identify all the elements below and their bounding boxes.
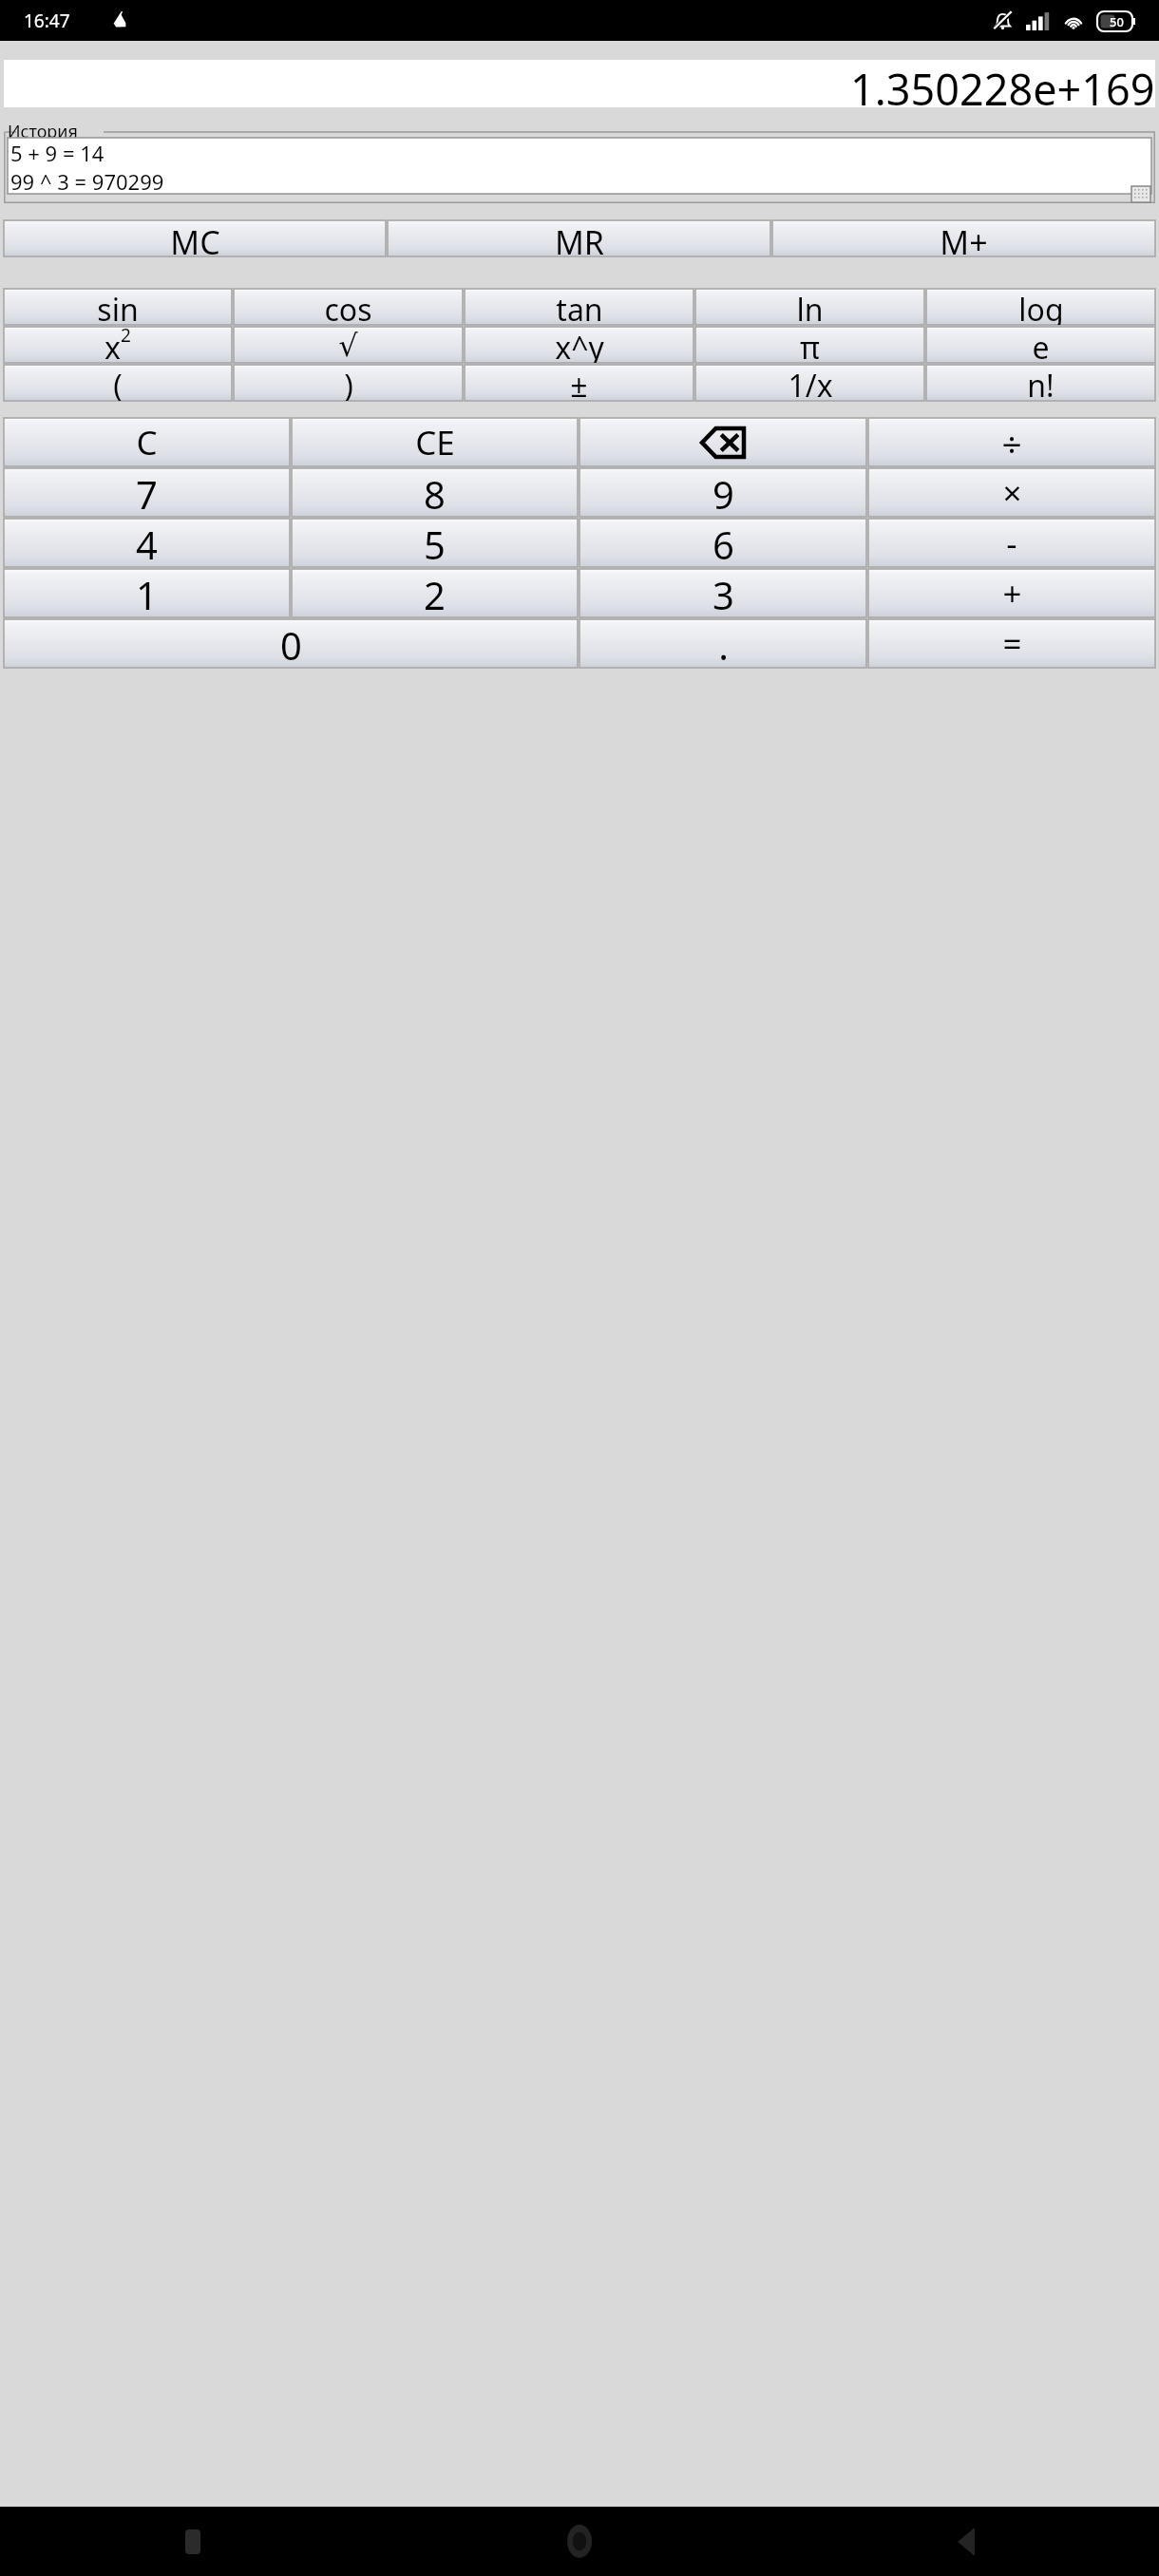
button[interactable]: 2 [292,569,578,617]
staticText: ( [113,365,123,401]
button[interactable]: Home [560,2517,599,2566]
staticText: 3 [712,569,734,617]
staticText: 50 [1110,13,1124,30]
staticText: n! [1027,365,1054,401]
button[interactable]: = [868,619,1155,668]
staticText: 2 [424,569,446,617]
button[interactable]: Backspace [579,418,866,466]
staticText: √ [338,328,358,363]
staticText: × [1002,470,1022,516]
staticText: 5 + 9 = 14 [10,139,104,167]
staticText: 9 [712,468,734,517]
button[interactable]: 9 [579,468,866,517]
staticText: 4 [136,519,158,567]
staticText: 1.350228e+169 [850,60,1155,107]
button[interactable]: MC [4,220,386,256]
button[interactable]: M+ [772,220,1155,256]
button[interactable]: ln [695,289,924,325]
staticText: ) [344,365,353,401]
button[interactable]: 7 [4,468,290,517]
button[interactable]: 8 [292,468,578,517]
staticText: x [104,327,121,363]
button[interactable]: 4 [4,519,290,567]
staticText: ÷ [1001,419,1022,466]
staticText: 99 ^ 3 = 970299 [10,167,164,194]
staticText: CE [415,420,455,465]
staticText: 1 [136,569,158,617]
staticText: - [1006,521,1017,566]
button[interactable]: e [926,327,1155,363]
button[interactable]: 1 [4,569,290,617]
button[interactable]: + [868,569,1155,617]
staticText: 2 [121,323,131,348]
staticText: 6 [712,519,734,567]
button[interactable]: 6 [579,519,866,567]
button[interactable]: x^y [465,327,693,363]
button[interactable]: CE [292,418,578,466]
staticText: x^y [555,327,604,363]
staticText: 7 [136,468,158,517]
staticText: M+ [940,220,988,256]
staticText: 5 [424,519,446,567]
button[interactable]: cos [234,289,463,325]
staticText: ± [570,365,588,401]
staticText: C [136,420,158,465]
staticText: cos [324,289,372,325]
staticText: log [1018,289,1064,325]
staticText: e [1032,327,1050,363]
staticText: 0 [280,619,302,668]
staticText: + [1002,571,1022,616]
button[interactable]: Back [948,2518,984,2566]
button[interactable]: MR [388,220,770,256]
button[interactable]: 1/x [695,365,924,401]
button[interactable]: - [868,519,1155,567]
button[interactable]: . [579,619,866,668]
staticText: . [718,619,729,668]
button[interactable]: C [4,418,290,466]
button[interactable]: × [868,468,1155,517]
button[interactable]: tan [465,289,693,325]
button[interactable]: √ [234,327,463,363]
staticText: MR [555,220,604,256]
button[interactable]: 5 [292,519,578,567]
staticText: 16:47 [24,9,70,33]
button[interactable]: ÷ [868,418,1155,466]
button[interactable]: ) [234,365,463,401]
button[interactable]: 3 [579,569,866,617]
staticText: 8 [424,468,446,517]
button[interactable]: ± [465,365,693,401]
staticText: tan [556,289,603,325]
button[interactable]: x [4,327,232,363]
staticText: sin [97,289,139,325]
button[interactable]: π [695,327,924,363]
button[interactable]: 0 [4,619,578,668]
button[interactable]: ( [4,365,232,401]
staticText: 1/x [788,365,833,401]
button[interactable]: sin [4,289,232,325]
staticText: π [800,327,820,363]
staticText: = [1002,621,1022,667]
staticText: MC [170,220,220,256]
button[interactable]: Recents [176,2520,210,2564]
button[interactable]: log [926,289,1155,325]
staticText: История [8,120,78,143]
staticText: ln [796,289,824,325]
button[interactable]: n! [926,365,1155,401]
